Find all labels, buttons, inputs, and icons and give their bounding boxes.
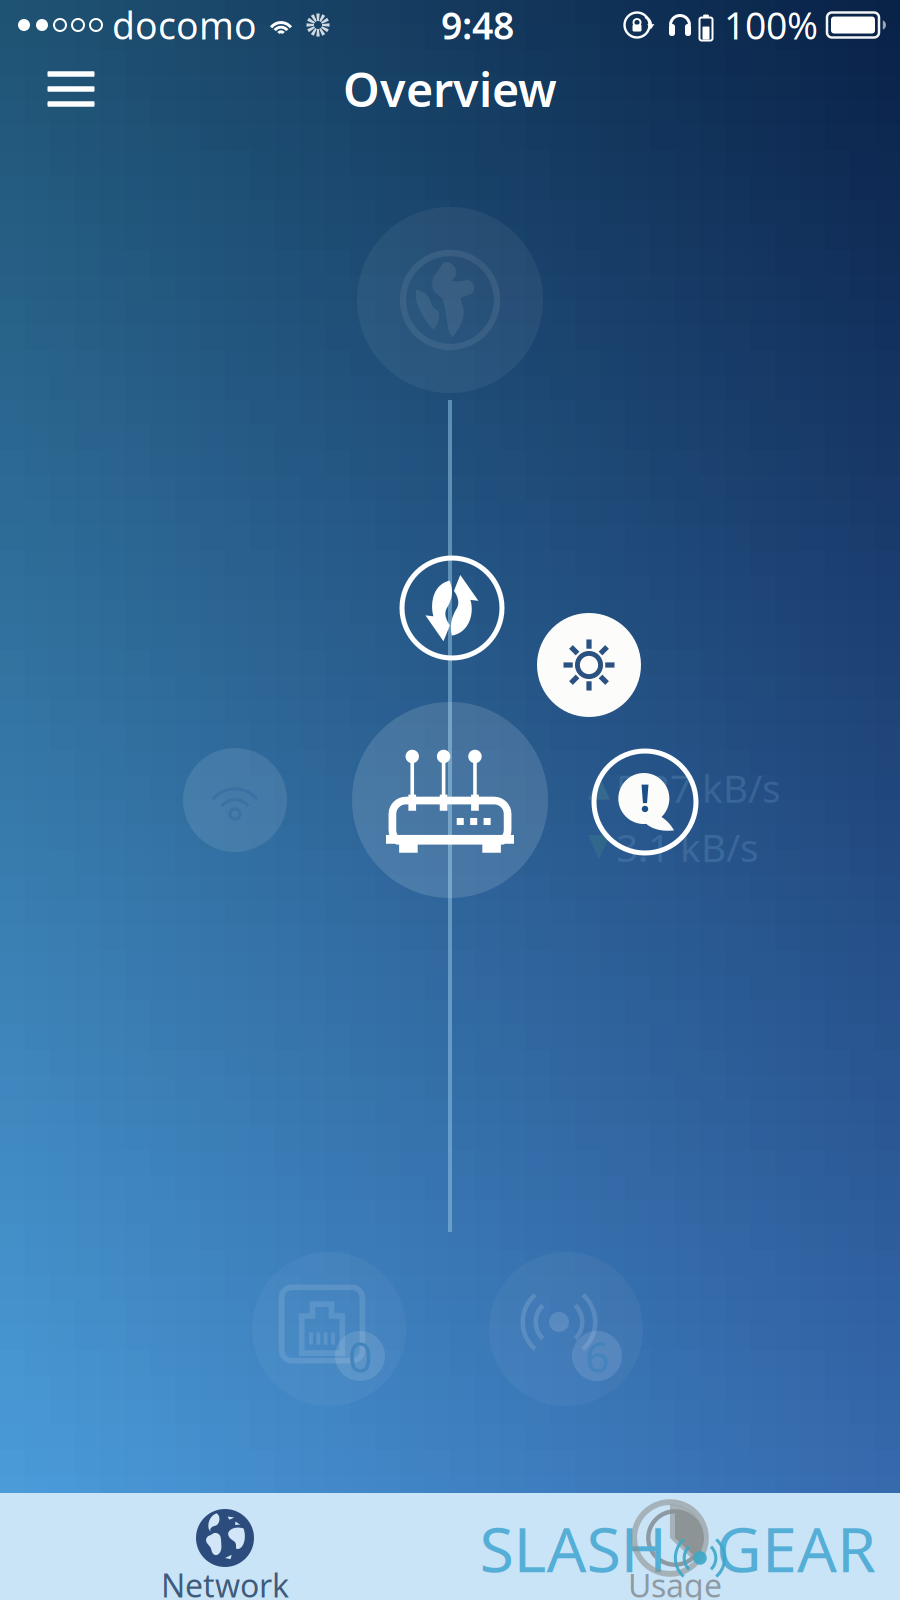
staticText: Overview	[343, 58, 557, 120]
button[interactable]: Network	[0, 1493, 450, 1600]
button[interactable]: Wireless clients: 6	[489, 1252, 643, 1406]
button[interactable]: Wired clients: 0	[252, 1252, 406, 1406]
staticText: SLASH	[479, 1506, 666, 1590]
staticText: 3.1 kB/s	[616, 821, 759, 873]
staticText: 9:48	[441, 0, 514, 50]
staticText: docomo	[112, 0, 257, 50]
button[interactable]: Alerts	[591, 748, 699, 856]
button[interactable]: Brightness	[537, 613, 641, 717]
staticText: 0	[348, 1328, 372, 1384]
staticText: Network	[161, 1564, 289, 1600]
button[interactable]: Sync	[399, 555, 505, 661]
staticText: 5.37 kB/s	[616, 762, 781, 813]
staticText: GEAR	[716, 1506, 876, 1590]
button[interactable]: Usage	[450, 1493, 900, 1600]
staticText: Usage	[628, 1564, 722, 1600]
button[interactable]: Menu	[27, 53, 115, 125]
button[interactable]: Router	[352, 702, 548, 898]
staticText: 6	[585, 1328, 609, 1384]
staticText: 100%	[724, 0, 818, 50]
